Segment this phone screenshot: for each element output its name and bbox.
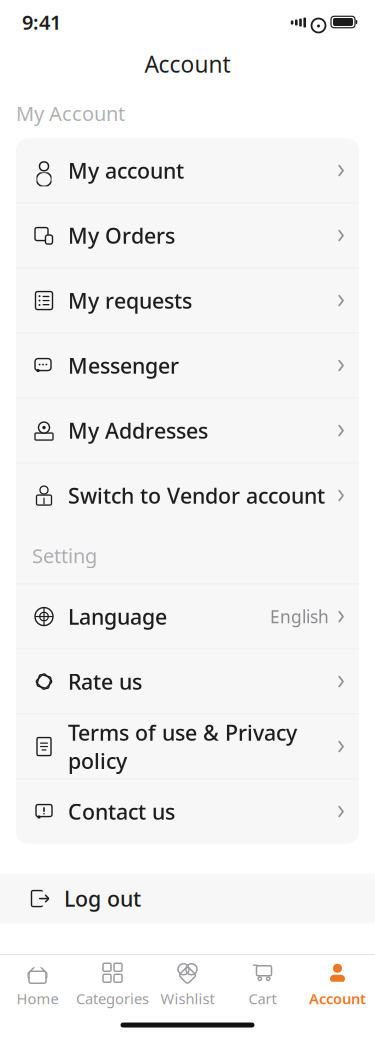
staticText: Rate us bbox=[68, 667, 142, 696]
button[interactable]: Messenger bbox=[16, 334, 359, 398]
staticText: Wishlist bbox=[160, 989, 214, 1008]
button[interactable]: Cart bbox=[225, 954, 300, 1012]
staticText: Categories bbox=[76, 989, 149, 1008]
button[interactable]: Categories bbox=[75, 954, 150, 1012]
staticText: Terms of use & Privacy policy bbox=[68, 718, 297, 775]
staticText: Language bbox=[68, 602, 167, 631]
staticText: My requests bbox=[68, 286, 192, 315]
button[interactable]: Switch to Vendor account bbox=[16, 464, 359, 528]
button[interactable]: Wishlist bbox=[150, 954, 225, 1012]
staticText: Log out bbox=[64, 884, 141, 913]
button[interactable]: Contact us bbox=[16, 780, 359, 844]
staticText: My Orders bbox=[68, 221, 175, 250]
button[interactable]: My account bbox=[16, 139, 359, 203]
button[interactable]: Log out bbox=[0, 874, 375, 924]
staticText: Messenger bbox=[68, 351, 179, 380]
staticText: My Addresses bbox=[68, 416, 208, 445]
button[interactable]: My Orders bbox=[16, 204, 359, 268]
button[interactable]: Home bbox=[0, 954, 75, 1012]
staticText: Switch to Vendor account bbox=[68, 481, 325, 510]
staticText: English bbox=[270, 605, 329, 628]
button[interactable]: Language bbox=[16, 585, 359, 649]
staticText: My account bbox=[68, 156, 184, 185]
staticText: Account bbox=[144, 49, 230, 79]
button[interactable]: My Addresses bbox=[16, 399, 359, 463]
button[interactable]: Terms of use & Privacy policy bbox=[16, 715, 359, 779]
staticText: Account bbox=[309, 989, 366, 1008]
staticText: Cart bbox=[248, 989, 276, 1008]
staticText: Setting bbox=[32, 542, 97, 569]
staticText: Home bbox=[16, 989, 58, 1008]
staticText: 9:41 bbox=[22, 9, 61, 35]
staticText: My Account bbox=[16, 100, 125, 127]
button[interactable]: My requests bbox=[16, 269, 359, 333]
staticText: Contact us bbox=[68, 797, 175, 826]
button[interactable]: Rate us bbox=[16, 650, 359, 714]
button[interactable]: Account bbox=[300, 954, 375, 1012]
